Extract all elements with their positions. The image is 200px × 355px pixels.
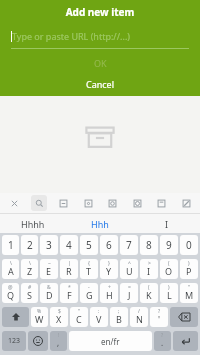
- button[interactable]: 7: [120, 235, 138, 255]
- staticText: =: [128, 284, 131, 291]
- staticText: /: [138, 308, 140, 315]
- button[interactable]: [28, 331, 48, 351]
- button[interactable]: Clipboard: [153, 195, 169, 211]
- button[interactable]: [2, 307, 29, 327]
- staticText: W: [35, 313, 44, 325]
- staticText: A: [8, 265, 14, 277]
- button[interactable]: \: [21, 259, 38, 279]
- staticText: X: [56, 313, 62, 325]
- staticText: I: [165, 218, 169, 230]
- button[interactable]: 5: [80, 235, 98, 255]
- staticText: @: [8, 284, 13, 291]
- staticText: 2: [27, 238, 33, 252]
- button[interactable]: ": [70, 307, 88, 327]
- button[interactable]: ^: [120, 259, 138, 279]
- staticText: Type or paste URL (http://...): [12, 30, 130, 42]
- button[interactable]: 4: [60, 235, 78, 255]
- staticText: \: [29, 260, 31, 267]
- button[interactable]: en/fr: [69, 331, 152, 351]
- button[interactable]: ): [160, 283, 178, 303]
- button[interactable]: @: [2, 283, 19, 303]
- staticText: Hhhh: [21, 218, 45, 230]
- button[interactable]: [170, 307, 198, 327]
- staticText: M: [185, 289, 194, 301]
- staticText: {: [88, 260, 90, 267]
- button[interactable]: ;: [110, 307, 128, 327]
- button[interactable]: ?: [154, 331, 171, 351]
- button[interactable]: ?: [150, 307, 168, 327]
- button[interactable]: =: [120, 283, 138, 303]
- button[interactable]: \: [2, 259, 19, 279]
- button[interactable]: 1: [2, 235, 19, 255]
- button[interactable]: (: [160, 259, 178, 279]
- button[interactable]: Hhhh: [0, 214, 66, 233]
- staticText: 7: [126, 238, 132, 252]
- button[interactable]: %: [31, 307, 48, 327]
- button[interactable]: Theme: [129, 195, 145, 211]
- staticText: Add new item: [0, 5, 200, 19]
- button[interactable]: (: [140, 283, 158, 303]
- button[interactable]: 6: [100, 235, 118, 255]
- button[interactable]: $: [50, 307, 68, 327]
- button[interactable]: -: [80, 283, 98, 303]
- staticText: +: [108, 284, 111, 291]
- button[interactable]: OK: [0, 55, 200, 71]
- button[interactable]: 2: [21, 235, 38, 255]
- staticText: 6: [106, 238, 112, 252]
- button[interactable]: #: [21, 283, 38, 303]
- staticText: J: [128, 289, 131, 301]
- button[interactable]: 0: [180, 235, 198, 255]
- button[interactable]: Pin: [178, 195, 194, 211]
- staticText: S: [27, 289, 32, 301]
- button[interactable]: Settings: [104, 195, 120, 211]
- staticText: P: [186, 265, 192, 277]
- button[interactable]: 123: [2, 331, 26, 351]
- button[interactable]: |: [60, 259, 78, 279]
- button[interactable]: ): [180, 259, 198, 279]
- button[interactable]: 3: [40, 235, 58, 255]
- staticText: U: [126, 265, 133, 277]
- staticText: (: [148, 284, 150, 291]
- staticText: ,: [57, 337, 60, 348]
- button[interactable]: !: [50, 331, 67, 351]
- button[interactable]: *: [60, 283, 78, 303]
- staticText: F: [67, 289, 72, 301]
- button[interactable]: Search: [31, 195, 47, 211]
- button[interactable]: 9: [160, 235, 178, 255]
- button[interactable]: >: [140, 259, 158, 279]
- button[interactable]: +: [100, 283, 118, 303]
- staticText: B: [116, 313, 122, 325]
- button[interactable]: Clipboard cut: [6, 195, 22, 211]
- staticText: ": [188, 284, 191, 291]
- button[interactable]: Sticker: [80, 195, 96, 211]
- button[interactable]: Hhh: [66, 214, 133, 233]
- button[interactable]: &: [40, 283, 58, 303]
- staticText: K: [146, 289, 152, 301]
- button[interactable]: Cancel: [0, 76, 200, 92]
- staticText: ": [78, 308, 81, 315]
- staticText: G: [86, 289, 93, 301]
- staticText: \: [10, 260, 12, 267]
- button[interactable]: ~: [40, 259, 58, 279]
- staticText: (: [168, 260, 170, 267]
- button[interactable]: I: [133, 214, 200, 233]
- staticText: 8: [146, 238, 152, 252]
- staticText: Q: [7, 289, 15, 301]
- button[interactable]: /: [130, 307, 148, 327]
- staticText: ): [188, 260, 190, 267]
- staticText: *: [68, 284, 71, 291]
- staticText: :: [98, 308, 100, 315]
- button[interactable]: GIF: [55, 195, 71, 211]
- button[interactable]: :: [90, 307, 108, 327]
- button[interactable]: 8: [140, 235, 158, 255]
- staticText: $: [58, 308, 61, 315]
- button[interactable]: }: [100, 259, 118, 279]
- staticText: .: [161, 337, 164, 348]
- staticText: 5: [86, 238, 92, 252]
- button[interactable]: ": [180, 283, 198, 303]
- staticText: en/fr: [101, 336, 120, 347]
- button[interactable]: {: [80, 259, 98, 279]
- staticText: |: [68, 260, 71, 267]
- button[interactable]: [173, 331, 198, 351]
- staticText: L: [167, 289, 172, 301]
